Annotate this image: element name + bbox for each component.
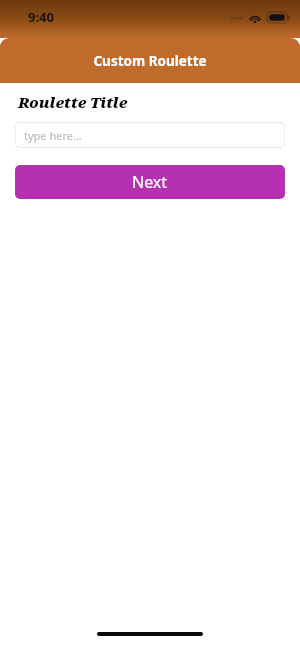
staticText: Custom Roulette	[93, 52, 207, 70]
staticText: Next	[132, 171, 168, 193]
button[interactable]: Custom Roulette	[0, 38, 300, 83]
button[interactable]: Next	[15, 165, 285, 199]
staticText: Roulette Title	[18, 92, 128, 112]
button[interactable]: Roulette title input	[15, 122, 285, 148]
staticText: 9:40	[28, 8, 54, 26]
staticText: type here...	[24, 128, 82, 143]
